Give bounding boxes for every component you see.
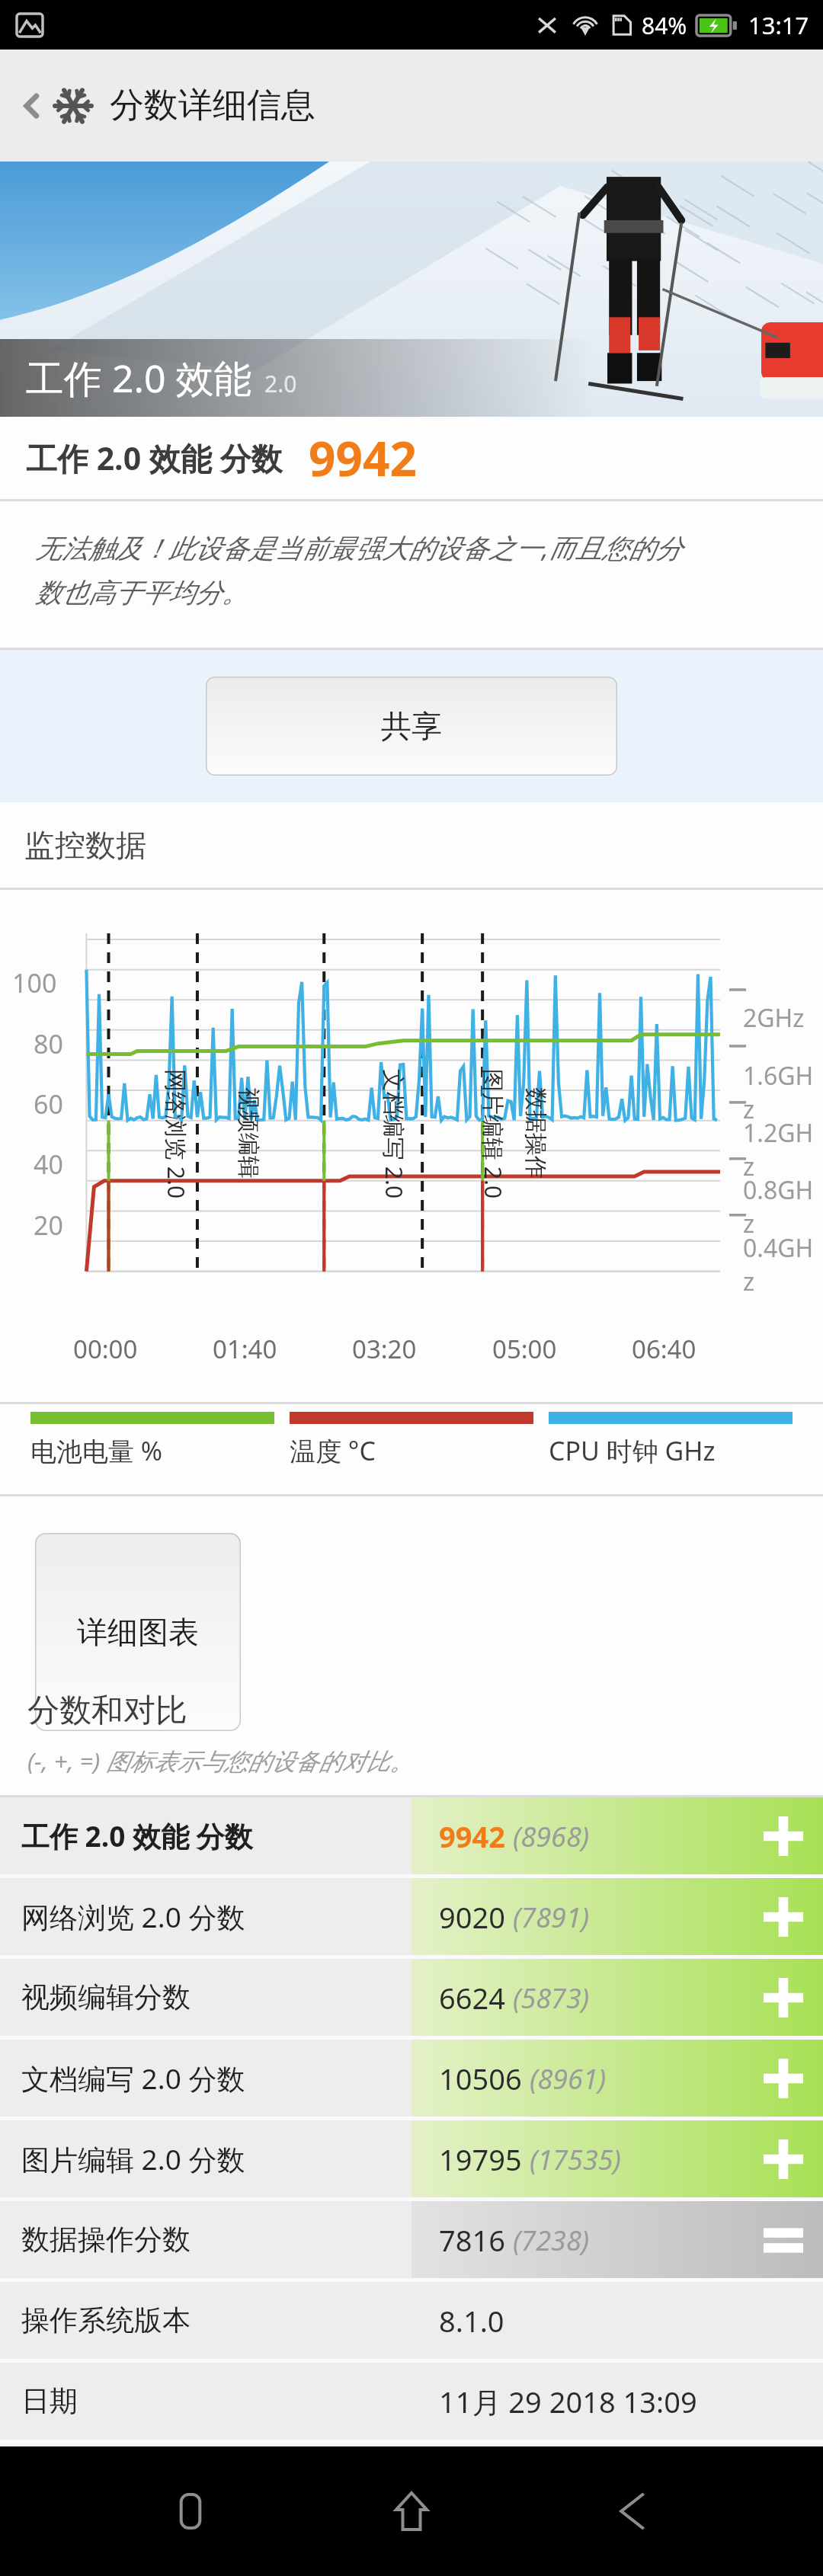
- staticText: 操作系统版本: [21, 2302, 191, 2338]
- staticText: 温度 °C: [290, 1433, 376, 1468]
- staticText: 01:40: [213, 1332, 277, 1366]
- staticText: 日期: [21, 2383, 78, 2419]
- staticText: 网络浏览 2.0 分数: [21, 1897, 245, 1936]
- button[interactable]: 详细图表: [35, 1533, 241, 1731]
- staticText: 10506: [439, 2059, 522, 2098]
- staticText: 6624: [439, 1978, 505, 2018]
- staticText: (7891): [513, 1899, 590, 1936]
- staticText: 文档编写 2.0: [379, 1069, 410, 1199]
- staticText: 分数详细信息: [110, 84, 315, 127]
- button[interactable]: 网络浏览 2.0 分数: [0, 1878, 823, 1955]
- staticText: 13:17: [748, 9, 809, 41]
- button[interactable]: 操作系统版本: [0, 2282, 823, 2359]
- staticText: 84%: [642, 10, 687, 41]
- staticText: 1.2GHz: [743, 1116, 823, 1183]
- staticText: 9942: [309, 426, 417, 490]
- button[interactable]: 文档编写 2.0 分数: [0, 2040, 823, 2117]
- staticText: 40: [34, 1147, 63, 1182]
- staticText: 无法触及！此设备是当前最强大的设备之一,而且您的分 数也高于平均分。: [35, 530, 682, 610]
- staticText: (7238): [513, 2222, 590, 2259]
- staticText: (17535): [530, 2141, 622, 2178]
- staticText: 60: [34, 1086, 63, 1122]
- staticText: 00:00: [73, 1332, 138, 1366]
- staticText: 视频编辑分数: [21, 1979, 191, 2015]
- staticText: 100: [12, 965, 57, 1000]
- staticText: 7816: [439, 2220, 505, 2260]
- staticText: 20: [34, 1208, 63, 1243]
- staticText: (8968): [513, 1818, 590, 1855]
- staticText: 2.0: [264, 368, 297, 399]
- staticText: 19795: [439, 2139, 522, 2179]
- staticText: 图片编辑 2.0: [478, 1069, 509, 1199]
- staticText: 文档编写 2.0 分数: [21, 2059, 245, 2098]
- staticText: 工作 2.0 效能 分数: [26, 437, 283, 479]
- staticText: CPU 时钟 GHz: [549, 1433, 716, 1468]
- staticText: 视频编辑: [234, 1087, 263, 1179]
- staticText: 数据操作: [521, 1087, 550, 1179]
- staticText: 06:40: [632, 1332, 697, 1366]
- staticText: 9942: [439, 1816, 505, 1856]
- staticText: 监控数据: [24, 826, 146, 864]
- staticText: 分数和对比: [27, 1691, 187, 1731]
- staticText: 2GHz: [743, 1001, 805, 1035]
- button[interactable]: Recents: [145, 2466, 236, 2557]
- staticText: 0.8GHz: [743, 1173, 823, 1240]
- staticText: (5873): [513, 1979, 590, 2017]
- staticText: 1.6GHz: [743, 1059, 823, 1126]
- staticText: 03:20: [352, 1332, 417, 1366]
- staticText: 05:00: [492, 1332, 557, 1366]
- staticText: 详细图表: [77, 1613, 199, 1651]
- staticText: 网络浏览 2.0: [161, 1069, 192, 1199]
- staticText: 共享: [381, 707, 442, 745]
- staticText: (-, +, =) 图标表示与您的设备的对比。: [27, 1745, 414, 1777]
- button[interactable]: 视频编辑分数: [0, 1959, 823, 2036]
- button[interactable]: 图片编辑 2.0 分数: [0, 2120, 823, 2197]
- button[interactable]: 工作 2.0 效能 分数: [0, 1797, 823, 1874]
- button[interactable]: Back: [587, 2466, 678, 2557]
- staticText: 0.4GHz: [743, 1231, 823, 1298]
- button[interactable]: 数据操作分数: [0, 2201, 823, 2278]
- staticText: 80: [34, 1026, 63, 1061]
- staticText: 9020: [439, 1897, 505, 1937]
- button[interactable]: Back: [11, 85, 53, 127]
- staticText: 11月 29 2018 13:09: [439, 2382, 697, 2421]
- staticText: 8.1.0: [439, 2301, 504, 2341]
- button[interactable]: 日期: [0, 2363, 823, 2440]
- staticText: (8961): [530, 2060, 607, 2098]
- staticText: 图片编辑 2.0 分数: [21, 2139, 245, 2178]
- staticText: 电池电量 %: [30, 1433, 163, 1468]
- staticText: 工作 2.0 效能: [26, 352, 252, 404]
- button[interactable]: 共享: [206, 677, 617, 776]
- button[interactable]: Home: [366, 2466, 457, 2557]
- staticText: 工作 2.0 效能 分数: [21, 1816, 253, 1855]
- staticText: 数据操作分数: [21, 2222, 191, 2258]
